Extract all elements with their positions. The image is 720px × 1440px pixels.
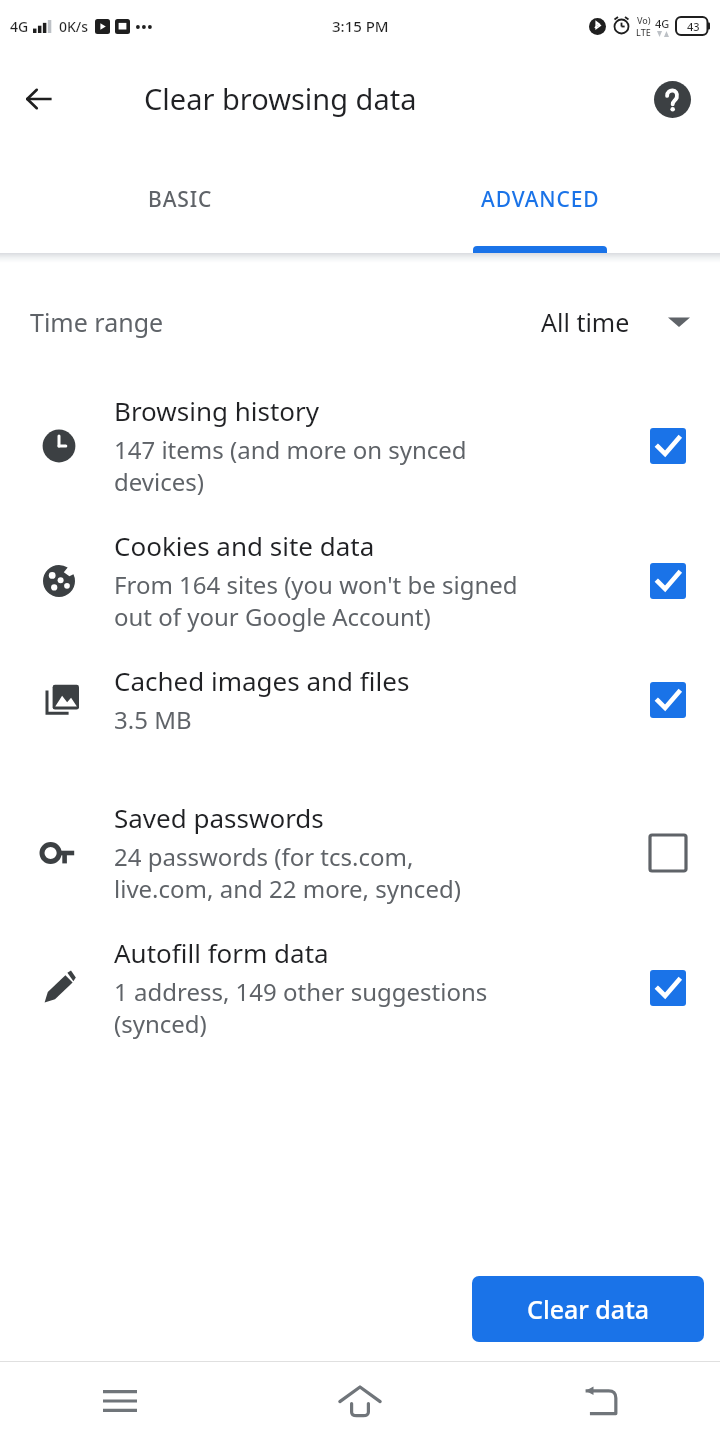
staticText: Clear browsing data (144, 79, 417, 118)
staticText: Saved passwords (114, 800, 324, 835)
button[interactable]: Help (649, 76, 695, 122)
button[interactable]: Recent apps (0, 1362, 240, 1440)
staticText: 147 items (and more on synced devices) (114, 433, 467, 498)
button[interactable]: BASIC (0, 145, 360, 253)
staticText: LTE (636, 26, 651, 38)
button[interactable]: Cached images and files (642, 674, 694, 726)
staticText: Browsing history (114, 393, 320, 428)
button[interactable]: Cookies and site data (642, 555, 694, 607)
staticText: Clear data (527, 1292, 650, 1326)
staticText: 0K/s (59, 17, 89, 36)
button[interactable]: Browsing history (0, 381, 720, 498)
button[interactable]: Cookies and site data (0, 498, 720, 633)
button[interactable]: Time range (0, 263, 720, 381)
staticText: 3:15 PM (332, 16, 389, 36)
staticText: 4G (10, 17, 29, 36)
staticText: Cached images and files (114, 663, 410, 698)
staticText: Time range (30, 305, 164, 339)
staticText: ADVANCED (481, 185, 600, 214)
button[interactable]: Autofill form data (642, 962, 694, 1014)
button[interactable]: Home (240, 1362, 480, 1440)
staticText: From 164 sites (you won't be signed out … (114, 568, 518, 633)
button[interactable]: Browsing history (642, 420, 694, 472)
staticText: 43 (687, 19, 700, 34)
staticText: BASIC (148, 185, 213, 214)
button[interactable]: Saved passwords (642, 827, 694, 879)
staticText: Vo) (637, 14, 651, 26)
staticText: Cookies and site data (114, 528, 375, 563)
staticText: All time (541, 305, 630, 339)
button[interactable]: Clear data (472, 1276, 704, 1342)
button[interactable]: Back (480, 1362, 720, 1440)
staticText: 1 address, 149 other suggestions (synced… (114, 975, 488, 1040)
staticText: Autofill form data (114, 935, 329, 970)
button[interactable]: ADVANCED (360, 145, 720, 253)
button[interactable]: Back (15, 75, 63, 123)
button[interactable]: Autofill form data (0, 905, 720, 1040)
button[interactable]: Cached images and files (0, 633, 720, 736)
staticText: 4G (655, 16, 670, 31)
button[interactable]: Saved passwords (0, 736, 720, 905)
staticText: 3.5 MB (114, 703, 192, 736)
staticText: 24 passwords (for tcs.com, live.com, and… (114, 840, 461, 905)
